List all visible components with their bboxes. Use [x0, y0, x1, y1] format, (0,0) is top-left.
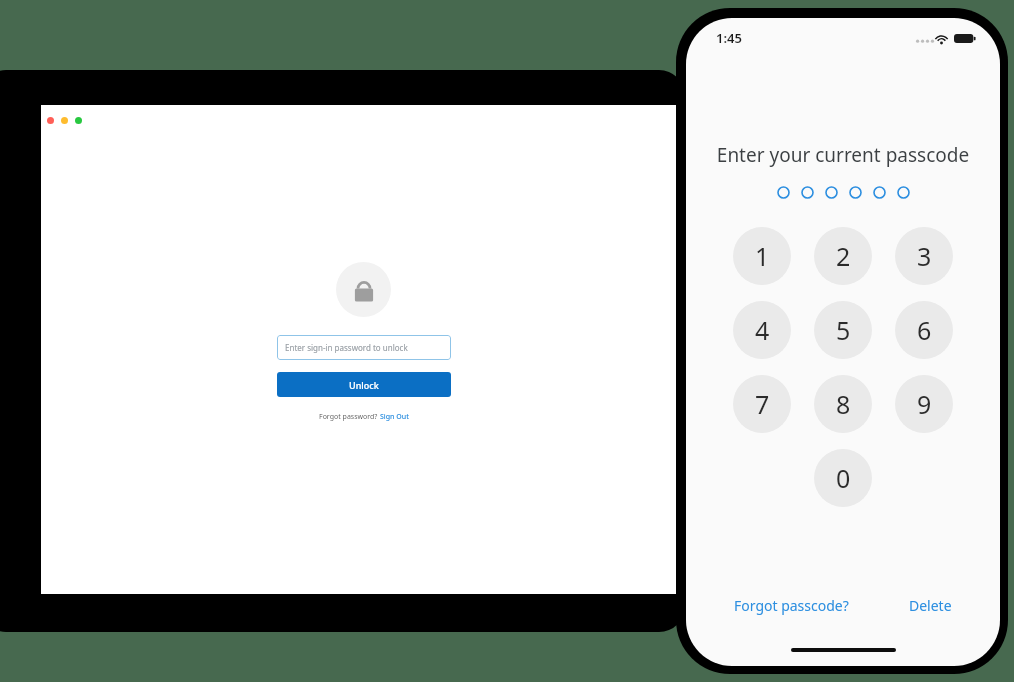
- staticText: Forgot passcode?: [734, 596, 849, 615]
- staticText: 2: [836, 239, 851, 273]
- button[interactable]: 4: [733, 301, 791, 359]
- staticText: 5: [836, 313, 851, 347]
- staticText: Enter sign-in password to unlock: [285, 342, 408, 353]
- staticText: Forgot password?: [319, 412, 380, 422]
- button[interactable]: 9: [895, 375, 953, 433]
- button[interactable]: 3: [895, 227, 953, 285]
- button[interactable]: 2: [814, 227, 872, 285]
- button[interactable]: 1: [733, 227, 791, 285]
- button[interactable]: 0: [814, 449, 872, 507]
- button[interactable]: Unlock: [277, 372, 451, 397]
- button[interactable]: Enter sign-in password to unlock: [277, 335, 451, 360]
- staticText: Enter your current passcode: [686, 142, 1000, 168]
- button[interactable]: 8: [814, 375, 872, 433]
- button[interactable]: Delete: [905, 592, 956, 619]
- staticText: 8: [836, 387, 851, 421]
- staticText: Sign Out: [380, 412, 409, 422]
- staticText: 1: [755, 239, 770, 273]
- button[interactable]: Sign Out: [380, 412, 409, 422]
- staticText: 7: [755, 387, 770, 421]
- button[interactable]: 7: [733, 375, 791, 433]
- staticText: Unlock: [349, 379, 379, 391]
- staticText: 9: [917, 387, 932, 421]
- staticText: Delete: [909, 596, 952, 615]
- staticText: 3: [917, 239, 932, 273]
- staticText: 6: [917, 313, 932, 347]
- button[interactable]: 6: [895, 301, 953, 359]
- button[interactable]: 5: [814, 301, 872, 359]
- staticText: 4: [755, 313, 770, 347]
- button[interactable]: Forgot passcode?: [730, 592, 853, 619]
- staticText: 1:45: [716, 29, 742, 47]
- staticText: 0: [836, 461, 851, 495]
